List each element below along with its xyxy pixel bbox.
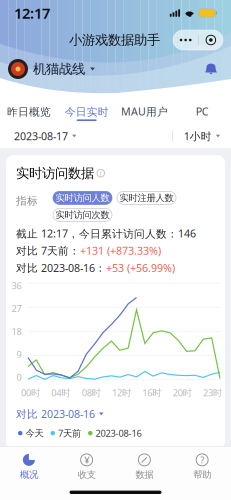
button[interactable]: 实时注册人数	[117, 191, 176, 204]
staticText: 04时	[51, 386, 70, 399]
button[interactable]: 实时访问人数	[53, 191, 112, 204]
button[interactable]: More	[173, 30, 198, 49]
staticText: 08时	[82, 386, 101, 399]
staticText: +131 (+873.33%)	[80, 243, 161, 258]
staticText: 1小时	[184, 129, 212, 143]
staticText: 机猫战线	[33, 61, 85, 77]
button[interactable]: ¥	[58, 447, 116, 487]
staticText: 23时	[203, 386, 222, 399]
staticText: 9	[16, 348, 21, 360]
staticText: 16时	[142, 386, 161, 399]
button[interactable]: 1小时	[173, 125, 231, 147]
staticText: 7天前	[58, 427, 81, 439]
staticText: 帮助	[193, 469, 211, 480]
staticText: 实时注册人数	[119, 192, 173, 204]
button[interactable]: 概况	[0, 447, 58, 487]
button[interactable]: 实时访问次数	[53, 208, 112, 221]
staticText: +53 (+56.99%)	[106, 261, 175, 275]
staticText: 对比 2023-08-16	[16, 407, 95, 421]
staticText: PC	[196, 104, 209, 118]
button[interactable]: 2023-08-17	[0, 125, 86, 147]
staticText: 12:17	[14, 3, 50, 23]
staticText: 收支	[78, 469, 96, 480]
staticText: 数据	[135, 469, 153, 480]
button[interactable]: 对比 2023-08-16	[6, 399, 103, 423]
staticText: MAU用户	[121, 104, 168, 118]
staticText: 18	[11, 325, 21, 338]
staticText: 36	[11, 279, 21, 292]
staticText: 概况	[20, 469, 38, 480]
staticText: 截止 12:17，今日累计访问人数：146	[16, 226, 196, 241]
button[interactable]: 今日实时	[58, 100, 116, 124]
staticText: 2023-08-17	[14, 129, 68, 143]
staticText: ¥	[84, 454, 89, 466]
staticText: 指标	[16, 194, 38, 207]
button[interactable]: MAU用户	[115, 100, 173, 124]
staticText: 0	[16, 371, 21, 383]
staticText: 2023-08-16	[95, 427, 141, 439]
staticText: i	[100, 169, 102, 178]
staticText: 对比 7天前：	[16, 243, 80, 258]
staticText: 12时	[112, 386, 131, 399]
staticText: 实时访问次数	[55, 209, 109, 221]
button[interactable]: 昨日概览	[0, 100, 58, 124]
button[interactable]: PC	[173, 100, 231, 124]
staticText: 今天	[25, 427, 43, 439]
button[interactable]: Close	[199, 30, 223, 49]
button[interactable]: ?	[173, 447, 231, 487]
staticText: 对比 2023-08-16：	[16, 261, 106, 275]
staticText: 今日实时	[65, 105, 109, 118]
staticText: 20时	[173, 386, 192, 399]
button[interactable]: Notifications	[199, 58, 223, 80]
staticText: 实时访问数据	[16, 165, 94, 181]
button[interactable]: 数据	[115, 447, 173, 487]
button[interactable]: 机猫战线	[8, 59, 95, 79]
staticText: 实时访问人数	[55, 192, 109, 204]
staticText: 昨日概览	[7, 105, 51, 118]
staticText: 00时	[21, 386, 40, 399]
staticText: ?	[200, 454, 204, 466]
staticText: 小游戏数据助手	[69, 32, 160, 48]
staticText: 27	[11, 302, 21, 315]
